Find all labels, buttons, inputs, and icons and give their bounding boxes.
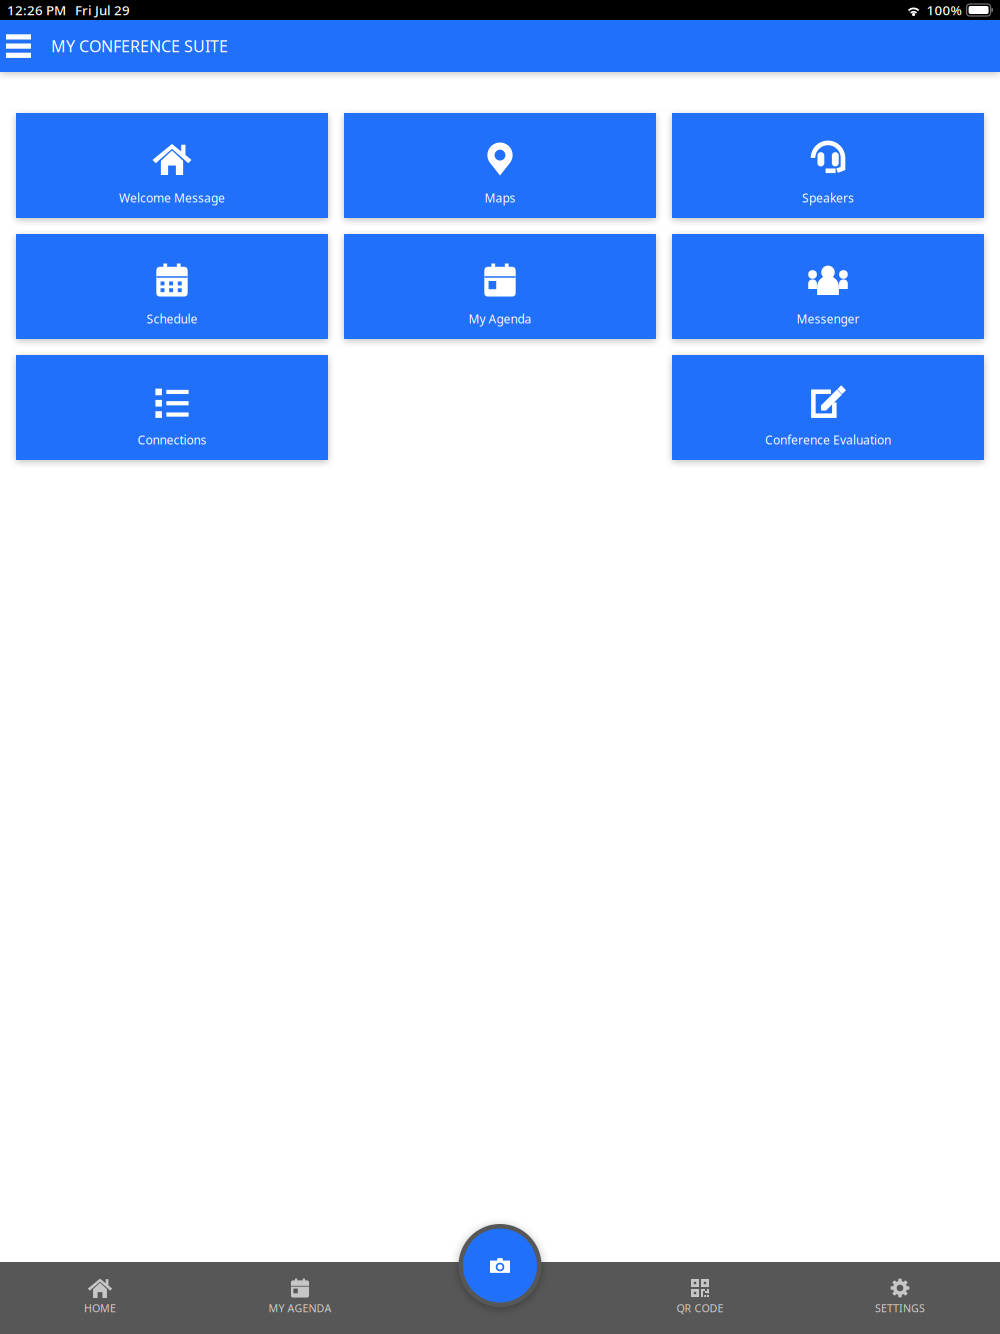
- staticText: Connections: [137, 432, 206, 448]
- button[interactable]: Connections: [16, 355, 328, 460]
- button[interactable]: Menu: [0, 20, 37, 72]
- staticText: Fri Jul 29: [75, 1, 130, 19]
- button[interactable]: HOME: [0, 1262, 200, 1334]
- button[interactable]: QR CODE: [600, 1262, 800, 1334]
- staticText: Welcome Message: [119, 190, 225, 206]
- staticText: MY CONFERENCE SUITE: [51, 35, 228, 57]
- staticText: Schedule: [146, 311, 197, 327]
- staticText: Conference Evaluation: [765, 432, 891, 448]
- staticText: HOME: [84, 1301, 116, 1315]
- staticText: 12:26 PM: [7, 1, 66, 19]
- button[interactable]: Welcome Message: [16, 113, 328, 218]
- button[interactable]: MY AGENDA: [200, 1262, 400, 1334]
- staticText: Speakers: [802, 190, 854, 206]
- button[interactable]: SETTINGS: [800, 1262, 1000, 1334]
- staticText: My Agenda: [468, 311, 531, 327]
- staticText: Maps: [484, 190, 515, 206]
- staticText: MY AGENDA: [268, 1301, 331, 1315]
- staticText: Messenger: [796, 311, 859, 327]
- button[interactable]: Maps: [344, 113, 656, 218]
- button[interactable]: Messenger: [672, 234, 984, 339]
- button[interactable]: Camera: [458, 1224, 541, 1307]
- button[interactable]: Conference Evaluation: [672, 355, 984, 460]
- staticText: QR CODE: [676, 1301, 723, 1315]
- button[interactable]: Schedule: [16, 234, 328, 339]
- button[interactable]: My Agenda: [344, 234, 656, 339]
- staticText: 100%: [927, 1, 962, 19]
- staticText: SETTINGS: [875, 1301, 925, 1315]
- button[interactable]: Speakers: [672, 113, 984, 218]
